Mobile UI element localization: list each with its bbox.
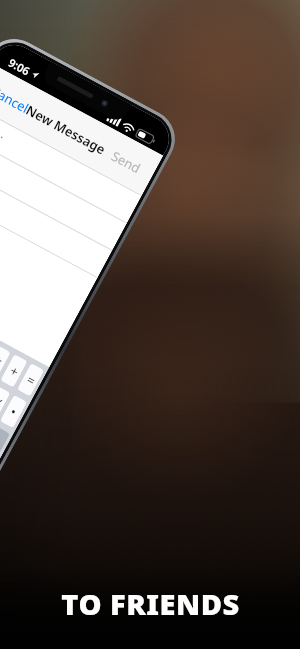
staticText: TO FRIENDS xyxy=(61,584,240,623)
staticText: Cancel xyxy=(0,82,32,117)
button[interactable]: iPhone showing a New Message screen xyxy=(0,28,185,506)
button[interactable]: * xyxy=(0,345,11,378)
staticText: From: xyxy=(0,116,7,146)
button[interactable]: Subject: xyxy=(0,158,112,278)
staticText: = xyxy=(23,370,39,390)
staticText: 9:06 xyxy=(6,55,33,78)
button[interactable]: = xyxy=(17,363,44,396)
staticText: ¥ xyxy=(0,393,5,412)
button[interactable]: From: xyxy=(0,103,141,224)
button[interactable]: To: xyxy=(0,131,127,251)
button[interactable]: Send xyxy=(102,140,151,185)
staticText: • xyxy=(7,402,20,421)
button[interactable]: ¥ xyxy=(0,386,10,419)
button[interactable]: + xyxy=(0,354,28,387)
button[interactable]: • xyxy=(0,395,27,428)
button[interactable]: Backspace xyxy=(0,419,10,460)
staticText: Send xyxy=(108,147,144,177)
staticText: New Message xyxy=(23,101,109,158)
staticText: + xyxy=(7,361,22,381)
button[interactable]: Cancel xyxy=(0,75,39,124)
staticText: * xyxy=(0,352,5,372)
